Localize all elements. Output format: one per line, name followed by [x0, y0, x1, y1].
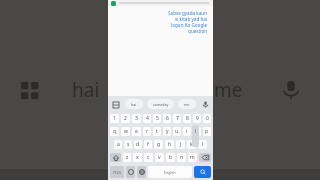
- staticText: hai: [131, 102, 137, 107]
- button[interactable]: 8: [183, 114, 191, 123]
- button[interactable]: someday: [147, 99, 174, 109]
- button[interactable]: 6: [163, 114, 171, 123]
- staticText: 2: [124, 115, 127, 122]
- staticText: s: [127, 141, 130, 148]
- staticText: g: [157, 141, 161, 148]
- button[interactable]: 7: [173, 114, 181, 123]
- staticText: r: [146, 128, 149, 135]
- button[interactable]: u: [173, 127, 181, 136]
- button[interactable]: hai: [125, 99, 143, 109]
- staticText: z: [126, 154, 129, 161]
- button[interactable]: b: [166, 153, 175, 162]
- staticText: 7: [176, 115, 179, 122]
- staticText: 6: [166, 115, 169, 122]
- staticText: b: [169, 154, 173, 161]
- button[interactable]: i: [183, 127, 191, 136]
- button[interactable]: t: [153, 127, 161, 136]
- button[interactable]: d: [134, 140, 142, 149]
- button[interactable]: c: [144, 153, 153, 162]
- staticText: n: [180, 154, 184, 161]
- button[interactable]: v: [155, 153, 164, 162]
- button[interactable]: q: [110, 127, 119, 136]
- button[interactable]: hai: [68, 73, 104, 107]
- button[interactable]: [110, 153, 121, 162]
- button[interactable]: Apps grid: [12, 73, 46, 107]
- staticText: t: [156, 128, 158, 135]
- button[interactable]: Search: [194, 166, 211, 178]
- staticText: English: [164, 170, 176, 175]
- staticText: y: [166, 128, 169, 135]
- button[interactable]: y: [163, 127, 171, 136]
- staticText: w: [124, 128, 128, 135]
- staticText: l: [202, 141, 204, 148]
- staticText: 3: [135, 115, 138, 122]
- staticText: hai: [72, 77, 100, 103]
- button[interactable]: w: [121, 127, 130, 136]
- button[interactable]: Clipboard: [111, 100, 120, 109]
- button[interactable]: f: [144, 140, 152, 149]
- staticText: c: [147, 154, 150, 161]
- staticText: p: [205, 128, 209, 135]
- button[interactable]: m: [188, 153, 197, 162]
- button[interactable]: r: [143, 127, 151, 136]
- staticText: j: [180, 141, 182, 148]
- button[interactable]: 5: [153, 114, 161, 123]
- button[interactable]: g: [154, 140, 163, 149]
- staticText: someday: [153, 102, 169, 107]
- staticText: 9: [196, 115, 199, 122]
- staticText: q: [113, 128, 117, 135]
- button[interactable]: k: [187, 140, 196, 149]
- staticText: h: [168, 141, 172, 148]
- staticText: v: [158, 154, 161, 161]
- staticText: e: [135, 128, 138, 135]
- staticText: 1: [113, 115, 116, 122]
- button[interactable]: e: [132, 127, 141, 136]
- staticText: si kitab yad hai: [174, 16, 207, 22]
- button[interactable]: English: [148, 166, 192, 178]
- button[interactable]: [137, 166, 146, 178]
- staticText: me: [184, 102, 190, 107]
- button[interactable]: l: [198, 140, 207, 149]
- button[interactable]: 1: [110, 114, 119, 123]
- staticText: question: [188, 28, 207, 34]
- button[interactable]: o: [193, 127, 201, 136]
- button[interactable]: 9: [193, 114, 201, 123]
- button[interactable]: j: [176, 140, 185, 149]
- button[interactable]: a: [114, 140, 122, 149]
- button[interactable]: me: [178, 99, 196, 109]
- button[interactable]: z: [123, 153, 131, 162]
- staticText: me: [214, 77, 243, 103]
- button[interactable]: 3: [132, 114, 141, 123]
- button[interactable]: 2: [121, 114, 130, 123]
- staticText: 4: [146, 115, 149, 122]
- staticText: o: [195, 128, 199, 135]
- button[interactable]: Voice input: [275, 72, 306, 108]
- button[interactable]: s: [124, 140, 132, 149]
- staticText: u: [175, 128, 179, 135]
- button[interactable]: 4: [143, 114, 151, 123]
- staticText: 8: [186, 115, 189, 122]
- button[interactable]: [108, 0, 213, 6]
- staticText: a: [117, 141, 120, 148]
- staticText: ?123: [113, 170, 121, 175]
- button[interactable]: h: [165, 140, 174, 149]
- staticText: k: [190, 141, 193, 148]
- staticText: m: [190, 154, 195, 161]
- staticText: d: [136, 141, 140, 148]
- button[interactable]: p: [203, 127, 211, 136]
- staticText: 0: [206, 115, 209, 122]
- staticText: l: [195, 128, 197, 135]
- staticText: i: [186, 128, 188, 135]
- button[interactable]: 0: [203, 114, 211, 123]
- button[interactable]: me: [210, 73, 247, 107]
- button[interactable]: n: [177, 153, 186, 162]
- button[interactable]: Voice typing: [200, 99, 210, 109]
- button[interactable]: [199, 153, 211, 162]
- staticText: x: [136, 154, 139, 161]
- button[interactable]: [126, 166, 135, 178]
- staticText: logon Ko Google: [171, 22, 207, 28]
- staticText: 5: [156, 115, 159, 122]
- button[interactable]: ?123: [110, 166, 124, 178]
- button[interactable]: x: [133, 153, 142, 162]
- staticText: f: [147, 141, 149, 148]
